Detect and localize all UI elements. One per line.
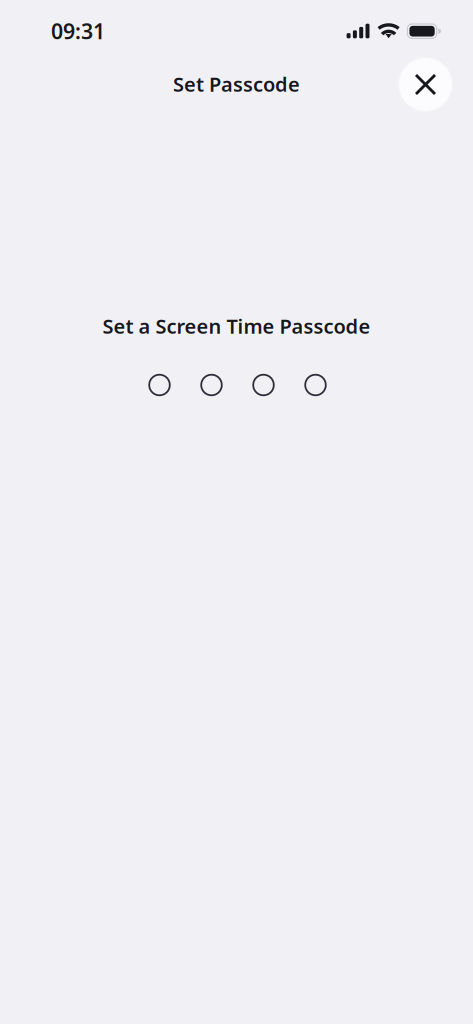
staticText: 09:31 xyxy=(51,17,105,45)
staticText: Set a Screen Time Passcode xyxy=(102,313,370,339)
button[interactable]: Close xyxy=(398,57,452,111)
staticText: Set Passcode xyxy=(173,71,300,97)
